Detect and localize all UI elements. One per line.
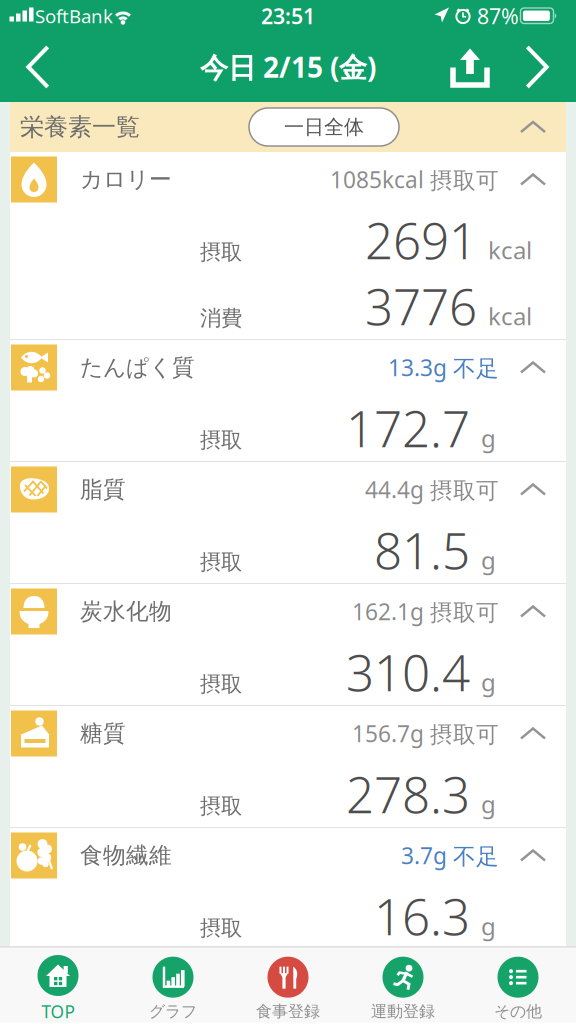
staticText: 摂取 [200,427,242,453]
staticText: 炭水化物 [80,598,172,625]
staticText: 食事登録 [256,1002,320,1021]
staticText: 81.5 [374,517,470,583]
staticText: 16.3 [374,883,470,949]
staticText: その他 [494,1002,542,1021]
staticText: 162.1g 摂取可 [352,596,499,627]
staticText: 2691 [365,207,477,273]
staticText: 1085kcal 摂取可 [330,164,499,195]
staticText: カロリー [80,166,172,193]
button[interactable]: 次の日 [509,31,565,102]
staticText: g [481,422,496,454]
button[interactable]: グラフ [115,952,230,1024]
button[interactable]: 前の日 [10,31,66,102]
staticText: g [481,544,496,576]
staticText: たんぱく質 [80,354,195,381]
staticText: 278.3 [346,761,470,827]
staticText: 310.4 [346,639,470,705]
staticText: 摂取 [200,549,242,575]
button[interactable]: 共有 [442,32,498,103]
staticText: 一日全体 [284,115,364,139]
staticText: kcal [488,234,532,266]
staticText: g [481,910,496,942]
staticText: 3.7g 不足 [401,840,499,871]
button[interactable]: 食事登録 [230,952,345,1024]
button[interactable]: 脂質 [10,462,566,517]
staticText: 3776 [365,273,477,339]
staticText: 156.7g 摂取可 [352,718,499,749]
button[interactable]: 食物繊維 [10,828,566,883]
button[interactable]: TOP [0,952,115,1024]
staticText: 運動登録 [371,1002,435,1021]
staticText: g [481,788,496,820]
button[interactable]: たんぱく質 [10,340,566,395]
staticText: 食物繊維 [80,842,172,869]
staticText: kcal [488,300,532,332]
button[interactable]: 閉じる [520,121,546,133]
staticText: グラフ [149,1002,197,1021]
staticText: 44.4g 摂取可 [365,474,499,505]
staticText: 摂取 [200,239,242,265]
staticText: TOP [41,1000,74,1023]
staticText: 今日 2/15 (金) [200,48,376,86]
staticText: 87% [477,2,519,30]
staticText: 摂取 [200,793,242,819]
staticText: 糖質 [80,720,126,747]
staticText: 脂質 [80,476,126,503]
staticText: SoftBank [35,4,113,28]
staticText: 消費 [200,305,242,331]
staticText: 23:51 [261,2,315,30]
button[interactable]: 運動登録 [345,952,460,1024]
staticText: 摂取 [200,671,242,697]
staticText: 栄養素一覧 [20,112,140,142]
button[interactable]: 糖質 [10,706,566,761]
button[interactable]: その他 [460,952,575,1024]
button[interactable]: カロリー [10,152,566,207]
staticText: 摂取 [200,915,242,941]
button[interactable]: 一日全体 [249,108,399,146]
staticText: g [481,666,496,698]
button[interactable]: 炭水化物 [10,584,566,639]
staticText: 13.3g 不足 [388,352,499,383]
staticText: 172.7 [346,395,470,461]
